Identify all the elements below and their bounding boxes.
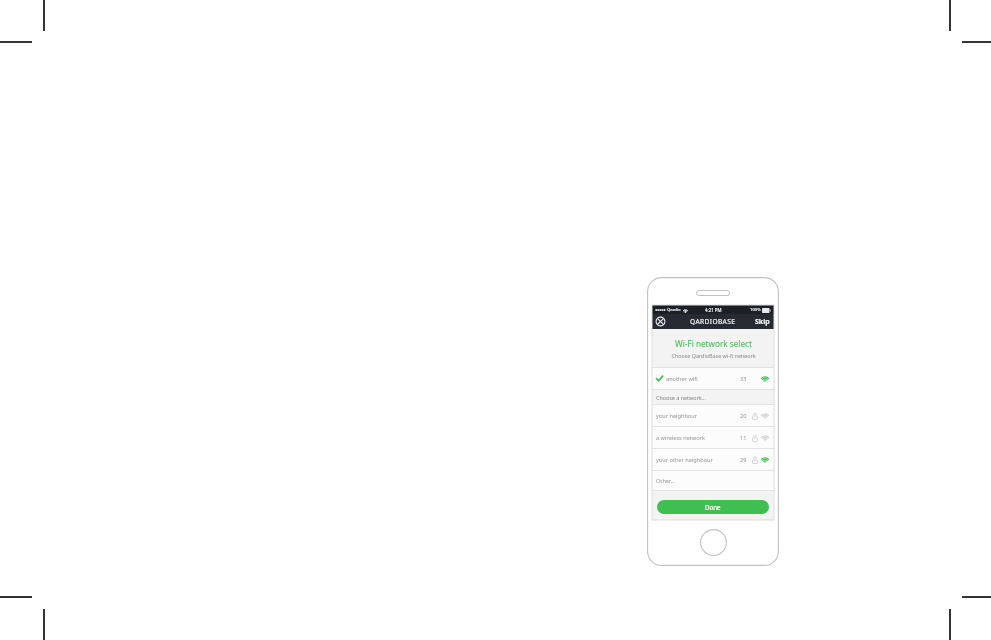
staticText: Other... — [656, 477, 675, 485]
button[interactable]: a wireless network — [652, 427, 774, 448]
button[interactable]: Other... — [652, 471, 774, 490]
staticText: 4:21 PM — [705, 307, 722, 313]
staticText: Done — [705, 503, 721, 511]
staticText: Wi-Fi network select — [675, 338, 752, 349]
staticText: 100% — [750, 307, 761, 313]
staticText: 29 — [740, 456, 747, 464]
staticText: Choose QardioBase wi-fi network — [671, 352, 756, 359]
staticText: a wireless network — [656, 434, 705, 442]
button[interactable]: Done — [657, 500, 769, 514]
button[interactable]: Close — [655, 316, 666, 327]
staticText: QARDIOBASE — [690, 317, 736, 326]
staticText: 20 — [740, 412, 747, 420]
staticText: Skip — [755, 317, 770, 327]
staticText: another wifi — [666, 375, 698, 383]
button[interactable]: your neighbour — [652, 405, 774, 426]
staticText: your neighbour — [656, 412, 698, 420]
staticText: 33 — [740, 375, 747, 383]
button[interactable]: another wifi — [652, 368, 774, 389]
staticText: Qardio — [667, 307, 681, 313]
button[interactable]: Skip — [751, 315, 774, 329]
staticText: 11 — [740, 434, 747, 442]
staticText: Choose a network... — [656, 394, 706, 401]
button[interactable]: your other neighbour — [652, 449, 774, 470]
staticText: your other neighbour — [656, 456, 713, 464]
